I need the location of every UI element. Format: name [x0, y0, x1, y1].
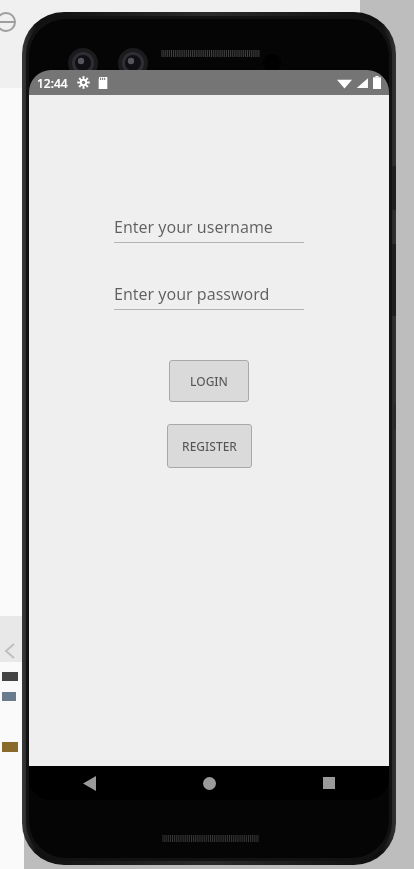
staticText: LOGIN: [190, 373, 228, 389]
button[interactable]: REGISTER: [167, 424, 252, 468]
button[interactable]: LOGIN: [169, 360, 249, 402]
staticText: Enter your password: [114, 283, 270, 305]
button[interactable]: Home: [149, 766, 269, 800]
button[interactable]: Recent apps: [269, 766, 389, 800]
staticText: REGISTER: [182, 438, 237, 454]
button[interactable]: Enter your password: [114, 283, 304, 310]
staticText: Enter your username: [114, 216, 273, 238]
button[interactable]: Enter your username: [114, 216, 304, 243]
staticText: 12:44: [37, 75, 68, 91]
button[interactable]: Back: [29, 766, 149, 800]
